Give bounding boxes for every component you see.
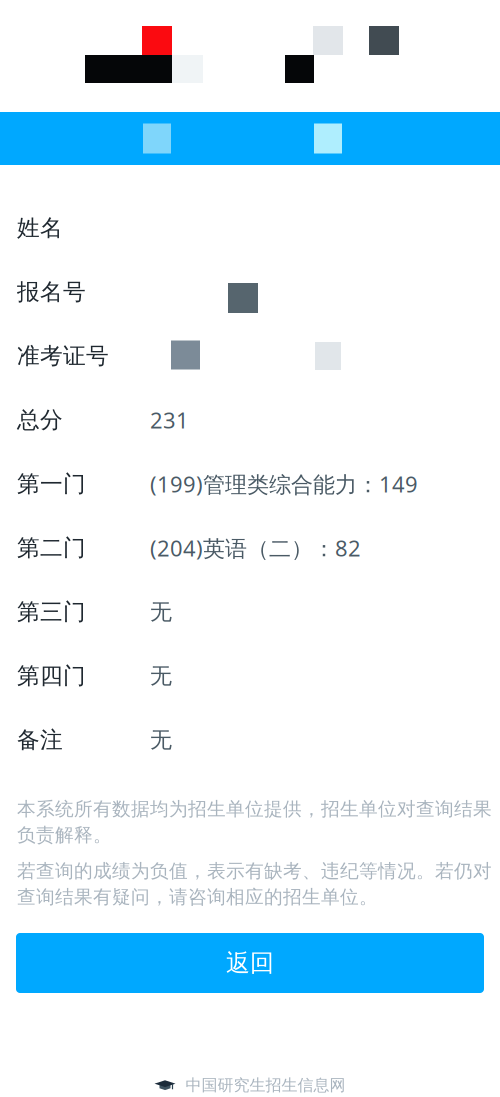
staticText: 查询结果有疑问，请咨询相应的招生单位。 [17, 885, 378, 908]
staticText: 无 [150, 598, 172, 626]
button[interactable]: 返回 [16, 933, 484, 993]
staticText: 若查询的成绩为负值，表示有缺考、违纪等情况。若仍对 [17, 859, 492, 882]
staticText: 总分 [17, 406, 63, 434]
staticText: 无 [150, 726, 172, 754]
staticText: 备注 [17, 726, 63, 754]
staticText: 姓名 [17, 214, 63, 242]
staticText: 无 [150, 662, 172, 690]
staticText: 第二门 [17, 534, 86, 562]
staticText: (204)英语（二）：82 [150, 533, 361, 563]
staticText: 返回 [226, 948, 274, 978]
staticText: 第一门 [17, 470, 86, 498]
staticText: 报名号 [17, 278, 86, 306]
staticText: 准考证号 [17, 342, 109, 370]
staticText: 本系统所有数据均为招生单位提供，招生单位对查询结果 [17, 797, 492, 820]
staticText: 第三门 [17, 598, 86, 626]
staticText: 第四门 [17, 662, 86, 690]
staticText: 负责解释。 [17, 823, 112, 846]
staticText: 中国研究生招生信息网 [185, 1075, 345, 1095]
staticText: (199)管理类综合能力：149 [150, 469, 418, 499]
staticText: 231 [150, 405, 189, 435]
